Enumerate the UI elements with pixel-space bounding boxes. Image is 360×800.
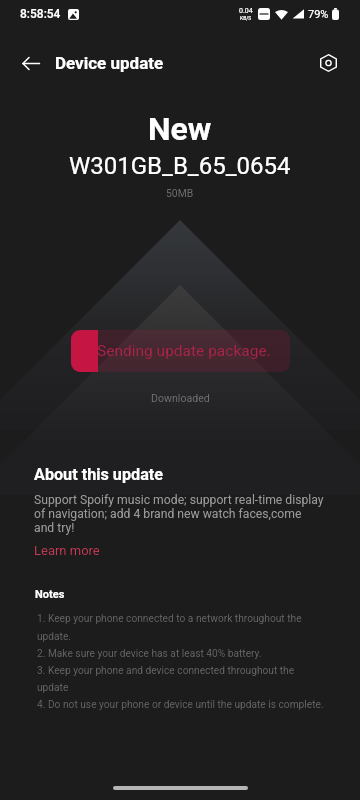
button[interactable]: Back [10,42,52,84]
staticText: 1. Keep your phone connected to a networ… [37,613,324,710]
staticText: Downloaded [151,392,210,404]
button[interactable]: Sending update package. [71,330,290,372]
staticText: KB/S [240,15,252,21]
staticText: Device update [55,53,164,73]
staticText: Learn more [34,543,100,558]
staticText: Sending update package. [97,342,271,360]
button[interactable]: Learn more [34,543,100,558]
staticText: 79% [308,8,329,21]
button[interactable]: Settings [308,43,348,83]
staticText: 8:58:54 [20,7,61,21]
staticText: Notes [35,588,65,601]
staticText: Support Spoify music mode; support real-… [34,493,324,535]
staticText: 50MB [166,187,194,199]
staticText: W301GB_B_65_0654 [69,152,291,180]
staticText: 0.04 [239,7,253,15]
staticText: New [148,110,212,148]
staticText: About this update [34,465,164,484]
